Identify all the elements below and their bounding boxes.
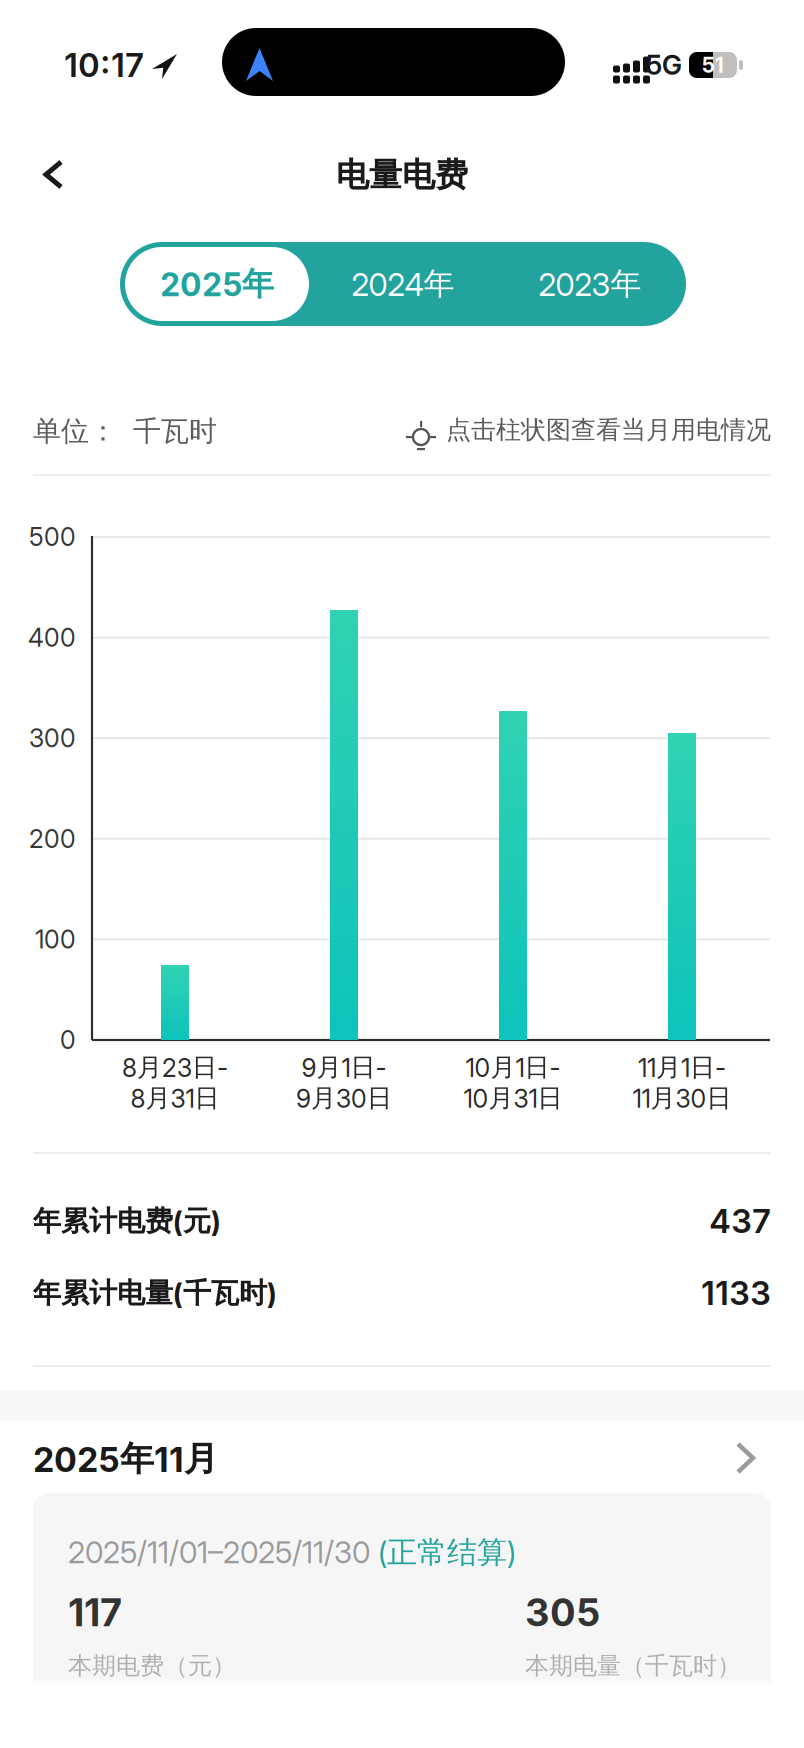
staticText: 年累计电量(千瓦时)	[33, 1276, 277, 1310]
staticText: 117	[68, 1590, 122, 1635]
button[interactable]: 2025年11月	[0, 1430, 804, 1488]
staticText: 单位： 千瓦时	[33, 414, 217, 448]
staticText: 10月31日	[463, 1083, 562, 1113]
staticText: 2024年	[351, 265, 454, 303]
staticText: 305	[525, 1590, 600, 1635]
staticText: 2025/11/01–2025/11/30	[68, 1535, 378, 1570]
staticText: 2025年11月	[33, 1438, 218, 1480]
staticText: 200	[29, 824, 76, 854]
staticText: 1133	[701, 1273, 771, 1312]
staticText: (正常结算)	[378, 1534, 516, 1571]
button[interactable]: Back	[32, 148, 75, 201]
staticText: 300	[29, 723, 76, 753]
staticText: 11月30日	[632, 1083, 731, 1113]
staticText: 电量电费	[336, 155, 468, 195]
staticText: 9月30日	[296, 1083, 392, 1113]
button[interactable]: 8月23日-8月31日	[161, 965, 189, 1040]
staticText: 2025年	[160, 264, 274, 304]
staticText: 8月23日-	[122, 1052, 228, 1083]
staticText: 10:17	[64, 45, 144, 84]
button[interactable]: 2025年	[125, 247, 309, 321]
staticText: 100	[35, 925, 76, 954]
staticText: 本期电费（元）	[68, 1651, 236, 1680]
staticText: 年累计电费(元)	[33, 1204, 221, 1238]
staticText: 400	[28, 623, 76, 652]
staticText: 9月1日-	[301, 1052, 386, 1083]
staticText: 0	[60, 1025, 76, 1055]
staticText: 5G	[646, 49, 682, 81]
button[interactable]: 2025/11/01–2025/11/30	[33, 1493, 771, 1748]
staticText: 点击柱状图查看当月用电情况	[446, 415, 771, 445]
staticText: 11月1日-	[638, 1052, 726, 1083]
button[interactable]: 10月1日-10月31日	[499, 711, 527, 1040]
staticText: 8月31日	[130, 1083, 219, 1113]
staticText: 本期电量（千瓦时）	[525, 1651, 741, 1680]
button[interactable]: 2023年	[497, 242, 683, 326]
button[interactable]: 11月1日-11月30日	[668, 733, 696, 1040]
button[interactable]: 2024年	[310, 242, 496, 326]
staticText: 500	[29, 522, 76, 552]
staticText: 51	[702, 53, 724, 77]
button[interactable]: 9月1日-9月30日	[330, 610, 358, 1040]
staticText: 10月1日-	[465, 1052, 560, 1083]
staticText: 2023年	[538, 265, 641, 303]
staticText: 437	[709, 1201, 771, 1240]
